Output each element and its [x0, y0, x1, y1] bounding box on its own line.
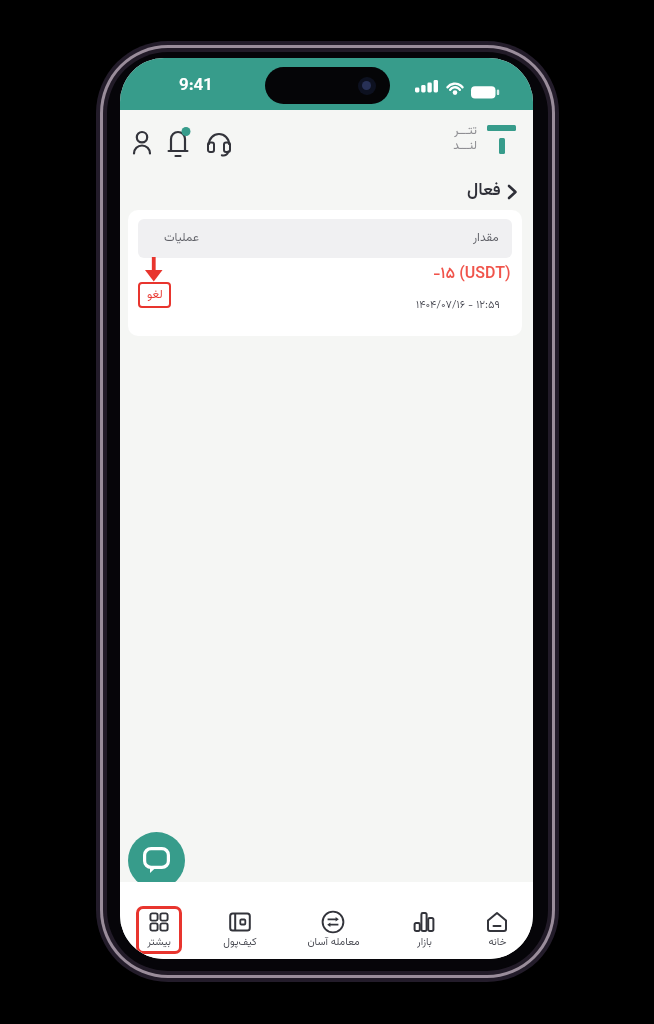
staticText: بیشتر — [147, 934, 171, 950]
staticText: 9:41 — [168, 73, 224, 100]
staticText: لغو — [147, 286, 163, 305]
staticText: عملیات — [164, 229, 199, 248]
staticText: مقدار — [473, 229, 499, 248]
staticText: تتـــر لنـــد — [453, 122, 477, 155]
staticText: خانه — [488, 934, 507, 950]
staticText: فعال — [467, 178, 501, 205]
staticText: -۱۵ (USDT) — [433, 262, 511, 287]
staticText: بازار — [417, 934, 432, 950]
staticText: معامله آسان — [307, 934, 360, 950]
staticText: کیف‌پول — [223, 934, 257, 950]
staticText: ۱۴۰۴/۰۷/۱۶ - ۱۲:۵۹ — [416, 297, 500, 314]
